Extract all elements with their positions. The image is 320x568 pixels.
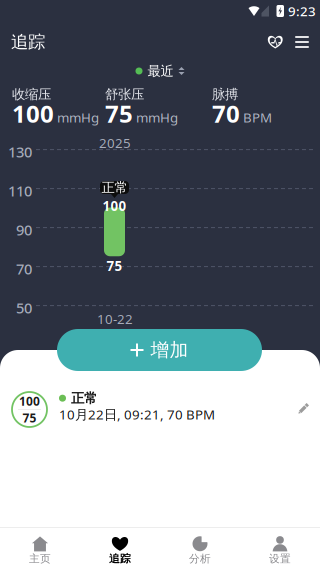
staticText: 最近 (147, 63, 173, 79)
staticText: mmHg (57, 108, 99, 126)
button[interactable]: 最近 (135, 62, 184, 80)
staticText: 75 (106, 257, 122, 275)
staticText: 100 (12, 97, 54, 129)
staticText: 50 (16, 298, 32, 317)
staticText: 正常 (101, 179, 127, 196)
button[interactable]: Health (267, 34, 283, 50)
button[interactable]: 主页 (0, 528, 80, 568)
staticText: 70 (16, 259, 32, 278)
button[interactable]: 追踪 (80, 528, 160, 568)
staticText: 增加 (150, 338, 188, 361)
button[interactable]: 100 (0, 383, 320, 437)
staticText: 75 (22, 410, 36, 426)
staticText: 分析 (189, 552, 211, 565)
staticText: 75 (105, 97, 133, 129)
staticText: 9:23 (288, 2, 316, 20)
staticText: 110 (8, 181, 32, 200)
button[interactable]: Menu (295, 34, 309, 50)
staticText: 设置 (269, 552, 291, 565)
staticText: 正常 (71, 390, 97, 406)
staticText: 90 (16, 220, 32, 239)
staticText: 100 (19, 393, 40, 409)
staticText: 追踪 (11, 31, 45, 53)
staticText: 70 (212, 97, 240, 129)
staticText: 130 (8, 142, 32, 161)
staticText: 10月22日, 09:21, 70 BPM (59, 405, 215, 423)
button[interactable]: 设置 (240, 528, 320, 568)
button[interactable]: 增加 (57, 329, 262, 371)
staticText: 10-22 (97, 310, 133, 328)
staticText: mmHg (136, 108, 178, 126)
button[interactable]: 分析 (160, 528, 240, 568)
staticText: 脉搏 (212, 86, 238, 102)
staticText: 舒张压 (105, 86, 144, 102)
staticText: 收缩压 (12, 86, 51, 102)
staticText: 追踪 (109, 552, 131, 565)
staticText: 2025 (99, 134, 131, 152)
staticText: BPM (243, 108, 272, 126)
staticText: 主页 (29, 552, 51, 565)
staticText: 100 (102, 197, 126, 215)
